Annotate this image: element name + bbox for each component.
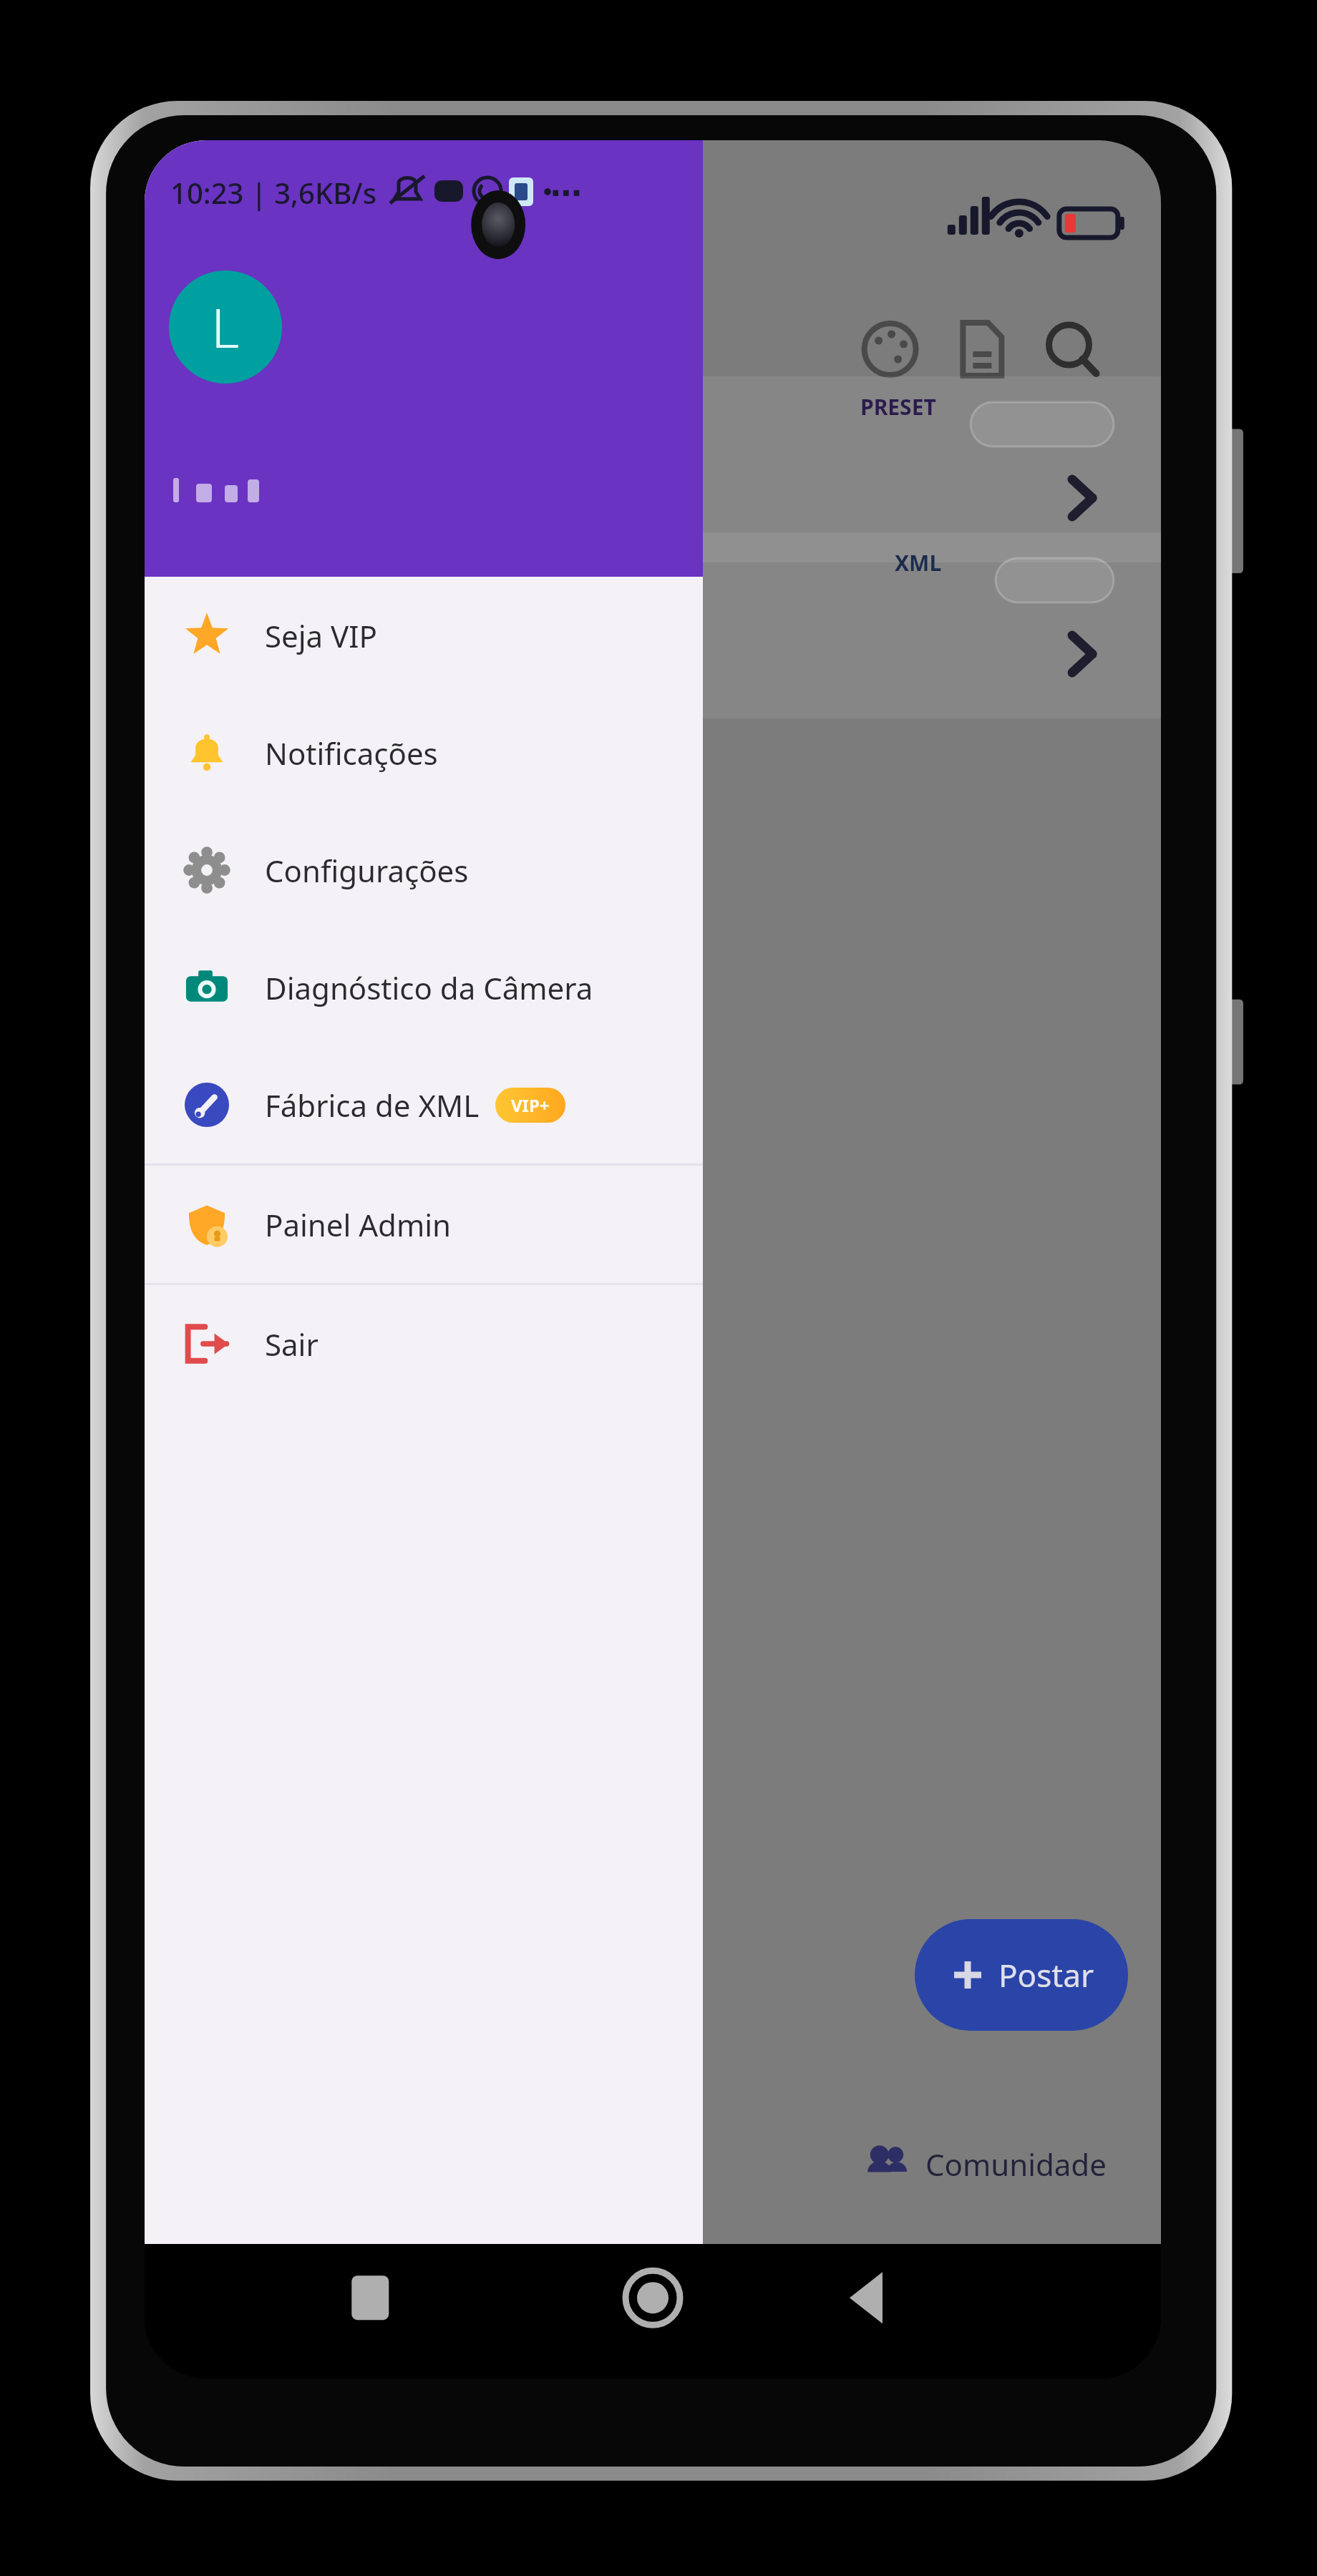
staticText: Comunidade xyxy=(925,2144,1107,2185)
staticText: ⋯ xyxy=(550,175,582,211)
button[interactable]: Postar xyxy=(915,1919,1128,2031)
staticText: Diagnóstico da Câmera xyxy=(265,967,593,1008)
button[interactable]: Diagnóstico da Câmera xyxy=(145,929,703,1046)
button[interactable]: Sair xyxy=(145,1285,703,1402)
staticText: Configurações xyxy=(265,850,469,891)
staticText: L xyxy=(211,290,240,364)
staticText: Painel Admin xyxy=(265,1204,451,1245)
staticText: Seja VIP xyxy=(265,615,377,656)
button[interactable]: Seja VIP xyxy=(145,577,703,694)
button[interactable]: Configurações xyxy=(145,811,703,929)
staticText: 10:23 | 3,6KB/s xyxy=(170,173,377,212)
button[interactable]: Notificações xyxy=(145,694,703,811)
button[interactable]: L xyxy=(169,270,282,384)
staticText: Sair xyxy=(265,1324,319,1365)
staticText: XML xyxy=(895,548,942,577)
staticText: Postar xyxy=(998,1953,1094,1996)
button[interactable]: Fábrica de XML xyxy=(145,1046,703,1163)
staticText: VIP+ xyxy=(511,1093,550,1117)
staticText: Fábrica de XML xyxy=(265,1085,480,1126)
button[interactable]: Painel Admin xyxy=(145,1166,703,1283)
button[interactable]: Comunidade xyxy=(864,2141,1107,2187)
staticText: PRESET xyxy=(860,392,936,421)
staticText: Notificações xyxy=(265,733,438,774)
